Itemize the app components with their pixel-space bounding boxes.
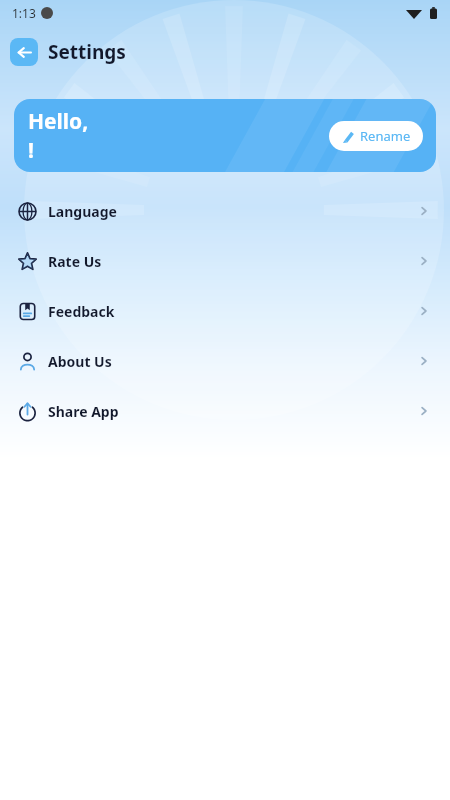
button[interactable]: Rate Us: [0, 236, 450, 286]
staticText: Settings: [48, 39, 126, 65]
button[interactable]: Feedback: [0, 286, 450, 336]
staticText: Language: [48, 202, 117, 221]
staticText: Rename: [360, 127, 411, 145]
staticText: Rate Us: [48, 252, 102, 271]
button[interactable]: Share App: [0, 386, 450, 436]
button[interactable]: Hello,: [14, 99, 436, 172]
staticText: Feedback: [48, 302, 115, 321]
button[interactable]: About Us: [0, 336, 450, 386]
staticText: Share App: [48, 402, 119, 421]
button[interactable]: Back: [10, 38, 38, 66]
staticText: !: [28, 136, 34, 165]
button[interactable]: Language: [0, 186, 450, 236]
staticText: Hello,: [28, 107, 89, 136]
staticText: 1:13: [12, 5, 36, 21]
button[interactable]: Rename: [329, 121, 423, 151]
staticText: About Us: [48, 352, 112, 371]
